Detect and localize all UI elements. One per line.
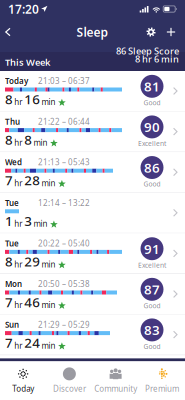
staticText: 21:13 – 05:43 bbox=[38, 157, 90, 167]
staticText: hr bbox=[14, 178, 22, 188]
staticText: Good bbox=[143, 342, 160, 351]
staticText: 7 bbox=[5, 334, 13, 351]
staticText: hr bbox=[14, 340, 22, 351]
staticText: 90 bbox=[144, 118, 160, 136]
staticText: Excellent bbox=[138, 261, 166, 270]
button[interactable]: Wed bbox=[0, 152, 185, 192]
button[interactable]: Premium bbox=[139, 367, 185, 394]
staticText: This Week bbox=[5, 56, 50, 68]
staticText: min bbox=[41, 340, 55, 351]
staticText: 7 bbox=[5, 293, 13, 311]
staticText: Discover bbox=[53, 383, 86, 394]
staticText: 21:29 – 05:29 bbox=[38, 319, 90, 330]
staticText: 12:14 – 13:22 bbox=[38, 197, 90, 208]
staticText: 17:20 bbox=[8, 1, 39, 17]
staticText: min bbox=[41, 300, 55, 310]
staticText: Sleep bbox=[76, 24, 108, 40]
staticText: min bbox=[41, 178, 55, 188]
staticText: 7 bbox=[5, 171, 13, 189]
staticText: 8 bbox=[5, 90, 13, 108]
staticText: Today bbox=[5, 76, 28, 86]
staticText: Good bbox=[143, 301, 160, 310]
staticText: Tue bbox=[5, 238, 19, 249]
button[interactable]: Today bbox=[0, 71, 185, 111]
button[interactable]: Community bbox=[92, 367, 139, 394]
button[interactable]: Settings bbox=[141, 19, 161, 45]
staticText: 87 bbox=[144, 280, 160, 298]
staticText: Good bbox=[143, 179, 160, 188]
staticText: Mon bbox=[5, 279, 22, 289]
staticText: Good bbox=[143, 98, 160, 107]
button[interactable]: Add sleep session bbox=[161, 19, 181, 45]
staticText: min bbox=[41, 259, 55, 270]
staticText: 86 Sleep Score bbox=[116, 45, 179, 57]
button[interactable]: Today bbox=[0, 367, 46, 394]
staticText: Wed bbox=[5, 157, 22, 167]
staticText: min bbox=[33, 137, 47, 148]
staticText: 46 bbox=[24, 293, 40, 311]
staticText: Excellent bbox=[138, 139, 166, 148]
button[interactable]: Mon bbox=[0, 274, 185, 314]
staticText: 8 hr 6 min bbox=[135, 53, 179, 65]
staticText: hr bbox=[14, 259, 22, 270]
staticText: Premium bbox=[145, 383, 179, 394]
staticText: 20:50 – 05:38 bbox=[38, 279, 90, 289]
staticText: min bbox=[33, 218, 47, 229]
staticText: min bbox=[41, 97, 55, 107]
staticText: Thu bbox=[5, 116, 20, 127]
staticText: hr bbox=[14, 137, 22, 148]
staticText: 8 bbox=[24, 131, 32, 148]
button[interactable]: Back bbox=[1, 19, 15, 45]
button[interactable]: Thu bbox=[0, 112, 185, 152]
button[interactable]: Discover bbox=[46, 367, 92, 394]
staticText: 28 bbox=[24, 171, 40, 189]
staticText: Sun bbox=[5, 319, 19, 330]
staticText: 16 bbox=[24, 90, 40, 108]
staticText: 91 bbox=[144, 240, 160, 258]
staticText: Tue bbox=[5, 197, 19, 208]
staticText: 24 bbox=[24, 334, 40, 351]
staticText: hr bbox=[14, 218, 22, 229]
staticText: 8 bbox=[5, 252, 13, 270]
button[interactable]: Sun bbox=[0, 315, 185, 355]
staticText: Community bbox=[94, 383, 137, 394]
staticText: hr bbox=[14, 300, 22, 310]
button[interactable]: Tue bbox=[0, 233, 185, 273]
staticText: 86 bbox=[144, 159, 160, 176]
staticText: Today bbox=[12, 383, 34, 394]
staticText: 29 bbox=[24, 252, 40, 270]
staticText: 1 bbox=[5, 212, 13, 230]
staticText: hr bbox=[14, 97, 22, 107]
staticText: 3 bbox=[24, 212, 32, 230]
button[interactable]: Tue bbox=[0, 193, 185, 233]
staticText: 21:22 – 06:44 bbox=[38, 116, 90, 127]
staticText: 83 bbox=[144, 321, 160, 339]
staticText: 81 bbox=[144, 77, 160, 95]
staticText: 20:22 – 05:40 bbox=[38, 238, 90, 249]
staticText: 8 bbox=[5, 131, 13, 148]
staticText: 21:03 – 06:37 bbox=[38, 76, 90, 86]
